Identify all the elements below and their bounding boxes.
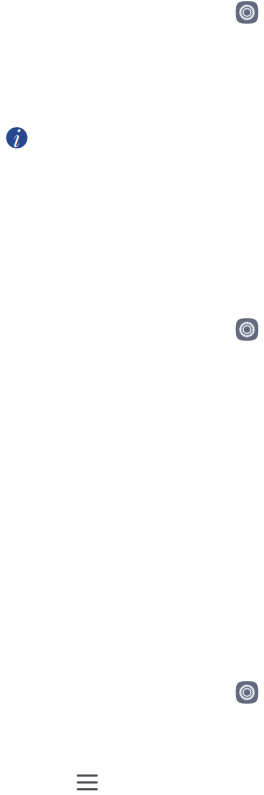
button[interactable]: Settings bbox=[236, 681, 258, 704]
button[interactable]: Menu bbox=[77, 774, 98, 790]
button[interactable]: Settings bbox=[236, 318, 258, 341]
staticText: i bbox=[13, 123, 20, 153]
button[interactable]: Settings bbox=[236, 1, 258, 24]
button[interactable]: Information bbox=[6, 127, 27, 148]
